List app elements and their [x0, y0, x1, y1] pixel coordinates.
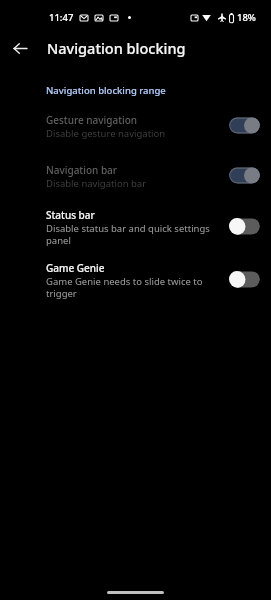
staticText: Disable status bar and quick settings pa… [46, 222, 213, 247]
button[interactable]: Off [229, 270, 260, 288]
staticText: Game Genie needs to slide twice to trigg… [46, 275, 213, 300]
staticText: Navigation bar [46, 163, 118, 177]
staticText: 18% [237, 11, 256, 24]
staticText: Disable navigation bar [46, 177, 147, 190]
staticText: Game Genie [46, 261, 105, 275]
button[interactable]: Status bar [0, 200, 271, 253]
button[interactable]: On [229, 116, 260, 134]
staticText: Navigation blocking [47, 38, 186, 58]
staticText: 11:47 [49, 11, 74, 24]
staticText: Navigation blocking range [46, 84, 166, 97]
button[interactable]: Game Genie [0, 253, 271, 308]
button[interactable]: Back [4, 32, 36, 64]
button[interactable]: Navigation bar [0, 155, 271, 200]
staticText: Gesture navigation [46, 113, 138, 127]
staticText: Disable gesture navigation [46, 127, 166, 140]
button[interactable]: Gesture navigation [0, 105, 271, 155]
staticText: Status bar [46, 208, 95, 222]
button[interactable]: On [229, 166, 260, 184]
button[interactable]: Off [229, 217, 260, 235]
